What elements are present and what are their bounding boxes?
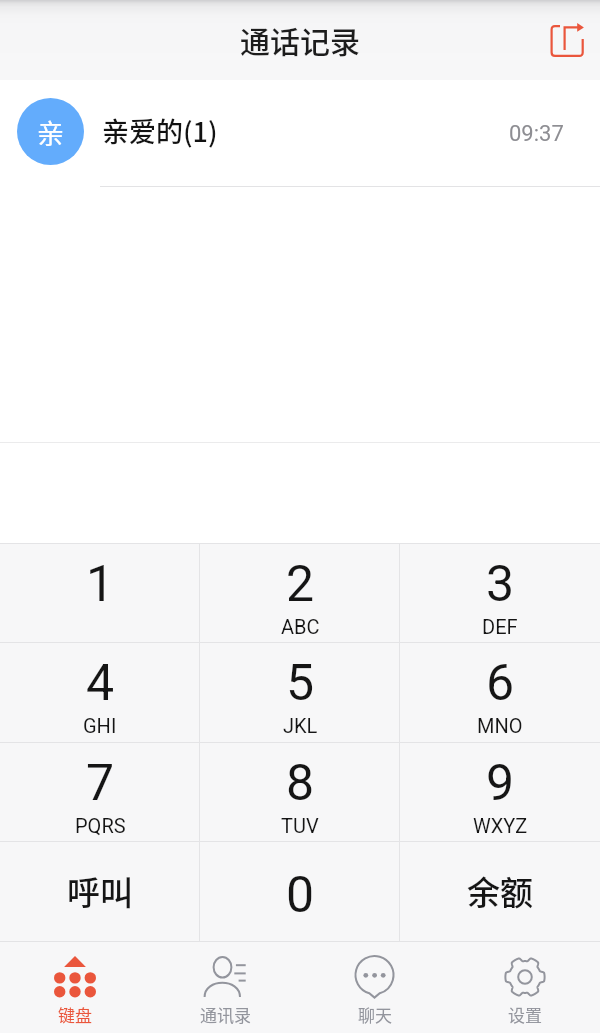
staticText: 余额 [467, 867, 533, 915]
staticText: 0 [286, 866, 315, 925]
button[interactable]: 3 [400, 544, 600, 643]
staticText: 1 [86, 555, 115, 614]
staticText: MNO [477, 714, 523, 737]
button[interactable]: 呼叫 [0, 842, 200, 941]
staticText: ABC [281, 615, 320, 638]
button[interactable]: Chat [300, 942, 450, 1033]
staticText: 6 [486, 654, 515, 713]
button[interactable]: Dialpad [0, 942, 150, 1033]
staticText: 4 [86, 654, 115, 713]
button[interactable]: 7 [0, 743, 200, 842]
staticText: 通话记录 [240, 18, 360, 61]
button[interactable]: 余额 [400, 842, 600, 941]
staticText: GHI [83, 714, 117, 737]
staticText: PQRS [75, 814, 126, 837]
button[interactable]: 4 [0, 643, 200, 742]
staticText: JKL [283, 714, 318, 737]
staticText: 7 [86, 754, 115, 813]
button[interactable]: Contacts [150, 942, 300, 1033]
button[interactable]: Share [539, 14, 591, 66]
staticText: WXYZ [473, 814, 528, 837]
button[interactable]: 0 [200, 842, 400, 941]
staticText: 键盘 [58, 1002, 92, 1027]
staticText: 通讯录 [200, 1002, 251, 1027]
staticText: TUV [281, 814, 319, 837]
staticText: 呼叫 [67, 867, 133, 915]
button[interactable]: 6 [400, 643, 600, 742]
staticText: 5 [286, 654, 315, 713]
button[interactable]: 5 [200, 643, 400, 742]
staticText: 3 [486, 555, 515, 614]
staticText: 8 [286, 754, 315, 813]
staticText: 09:37 [509, 121, 564, 147]
button[interactable]: 亲 [0, 80, 600, 183]
staticText: 亲爱的(1) [102, 111, 218, 150]
button[interactable]: 1 [0, 544, 200, 643]
staticText: 亲 [37, 113, 64, 152]
button[interactable]: 8 [200, 743, 400, 842]
staticText: 9 [486, 754, 515, 813]
staticText: 设置 [508, 1002, 542, 1027]
button[interactable]: Settings [450, 942, 600, 1033]
staticText: DEF [482, 615, 518, 638]
staticText: 2 [286, 555, 315, 614]
staticText: 聊天 [358, 1002, 392, 1027]
button[interactable]: 9 [400, 743, 600, 842]
button[interactable]: 2 [200, 544, 400, 643]
